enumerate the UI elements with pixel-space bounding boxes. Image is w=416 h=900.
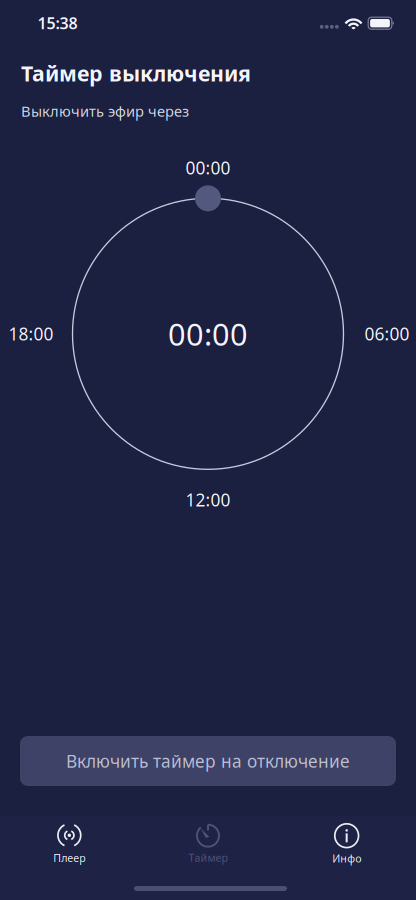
staticText: Таймер <box>188 850 227 865</box>
staticText: 00:00 <box>185 156 230 179</box>
staticText: Включить таймер на отключение <box>66 749 350 772</box>
staticText: Таймер выключения <box>21 59 251 87</box>
staticText: Выключить эфир через <box>21 101 189 121</box>
staticText: 15:38 <box>37 12 77 34</box>
button[interactable]: Включить таймер на отключение <box>20 736 396 786</box>
staticText: 18:00 <box>8 322 53 345</box>
button[interactable]: Плеер <box>0 819 139 870</box>
staticText: 06:00 <box>364 322 409 345</box>
staticText: Инфо <box>332 851 361 866</box>
staticText: 12:00 <box>185 488 230 511</box>
button[interactable]: Инфо <box>277 818 416 871</box>
button[interactable]: Таймер <box>139 819 277 870</box>
staticText: Плеер <box>53 851 85 865</box>
staticText: 00:00 <box>168 313 248 354</box>
